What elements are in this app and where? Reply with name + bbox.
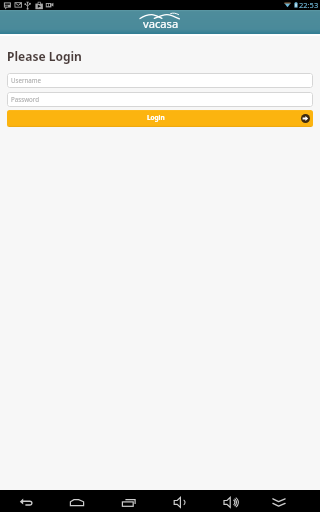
staticText: 22:53 bbox=[299, 0, 319, 10]
button[interactable]: Password bbox=[7, 92, 313, 107]
button[interactable]: Volume up bbox=[208, 490, 252, 512]
staticText: Password bbox=[11, 95, 39, 103]
button[interactable]: Home bbox=[55, 490, 99, 512]
staticText: Please Login bbox=[7, 48, 82, 64]
staticText: Login bbox=[147, 113, 165, 122]
button[interactable]: Recents bbox=[106, 490, 150, 512]
button[interactable]: Login bbox=[7, 110, 313, 127]
staticText: vacasa bbox=[143, 16, 179, 31]
button[interactable]: Volume down bbox=[157, 490, 201, 512]
button[interactable]: Collapse bbox=[257, 490, 301, 512]
staticText: Username bbox=[11, 76, 42, 84]
button[interactable]: Back bbox=[4, 490, 48, 512]
button[interactable]: Username bbox=[7, 73, 313, 88]
